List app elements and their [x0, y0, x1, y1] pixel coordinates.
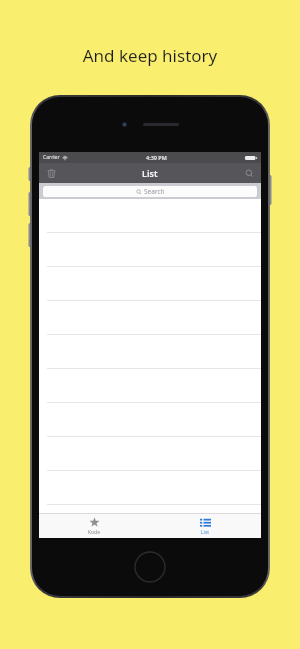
staticText: 4:39 PM: [146, 154, 167, 161]
button[interactable]: [39, 199, 261, 233]
button[interactable]: [39, 301, 261, 335]
button[interactable]: Search: [240, 164, 258, 182]
staticText: Search: [144, 187, 165, 196]
button[interactable]: [39, 267, 261, 301]
button[interactable]: [39, 437, 261, 471]
button[interactable]: Delete: [42, 164, 60, 182]
staticText: Kode: [88, 529, 101, 536]
staticText: List: [201, 529, 210, 536]
button[interactable]: Search: [43, 186, 257, 197]
button[interactable]: [39, 335, 261, 369]
staticText: Carrier: [43, 154, 60, 161]
button[interactable]: [39, 233, 261, 267]
button[interactable]: [39, 471, 261, 505]
button[interactable]: List: [150, 514, 261, 538]
button[interactable]: [39, 403, 261, 437]
staticText: List: [142, 167, 158, 179]
staticText: And keep history: [0, 44, 300, 67]
button[interactable]: [39, 369, 261, 403]
button[interactable]: Kode: [39, 514, 150, 538]
